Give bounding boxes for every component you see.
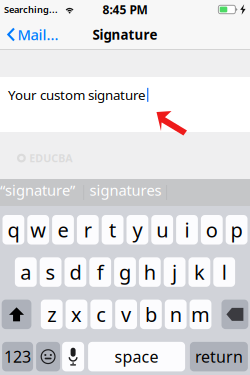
- staticText: l: [222, 259, 227, 285]
- button[interactable]: “signature”: [0, 179, 84, 206]
- button[interactable]: e: [52, 215, 74, 244]
- button[interactable]: Shift: [2, 300, 31, 329]
- button[interactable]: u: [151, 215, 173, 244]
- staticText: i: [184, 216, 189, 243]
- button[interactable]: f: [89, 257, 111, 287]
- button[interactable]: i: [176, 215, 198, 244]
- button[interactable]: Mail...: [0, 21, 64, 48]
- button[interactable]: g: [114, 257, 136, 287]
- staticText: Mail...: [18, 25, 59, 44]
- staticText: a: [20, 259, 31, 285]
- button[interactable]: l: [213, 257, 235, 287]
- button[interactable]: j: [164, 257, 185, 287]
- button[interactable]: signatures: [84, 179, 166, 206]
- staticText: 8:45 PM: [102, 1, 147, 17]
- button[interactable]: z: [41, 300, 63, 329]
- staticText: x: [71, 301, 82, 328]
- staticText: y: [132, 216, 142, 243]
- button[interactable]: h: [139, 257, 161, 287]
- button[interactable]: Delete: [221, 300, 248, 329]
- staticText: w: [30, 216, 46, 243]
- button[interactable]: b: [140, 300, 162, 329]
- staticText: o: [206, 216, 218, 243]
- staticText: d: [69, 259, 81, 285]
- button[interactable]: q: [2, 215, 24, 244]
- button[interactable]: return: [190, 342, 248, 371]
- staticText: m: [191, 301, 210, 328]
- button[interactable]: space: [88, 342, 185, 371]
- staticText: k: [194, 259, 205, 285]
- button[interactable]: o: [201, 215, 223, 244]
- button[interactable]: c: [90, 300, 112, 329]
- staticText: h: [144, 259, 156, 285]
- staticText: j: [172, 259, 177, 285]
- staticText: EDUCBA: [29, 151, 72, 165]
- button[interactable]: w: [27, 215, 49, 244]
- staticText: t: [109, 216, 116, 243]
- staticText: e: [57, 216, 68, 243]
- staticText: v: [121, 301, 131, 328]
- staticText: signatures: [89, 180, 161, 200]
- staticText: Signature: [92, 26, 157, 43]
- staticText: Your custom signature: [8, 86, 146, 104]
- staticText: s: [46, 259, 56, 285]
- button[interactable]: d: [64, 257, 86, 287]
- button[interactable]: m: [190, 300, 211, 329]
- staticText: q: [7, 216, 19, 243]
- staticText: g: [119, 259, 131, 285]
- staticText: space: [115, 346, 159, 367]
- staticText: return: [195, 346, 243, 367]
- button[interactable]: Emoji: [36, 342, 60, 371]
- staticText: n: [170, 301, 182, 328]
- button[interactable]: s: [40, 257, 61, 287]
- button[interactable]: a: [15, 257, 37, 287]
- button[interactable]: Dictation: [62, 342, 84, 371]
- staticText: z: [47, 301, 56, 328]
- button[interactable]: p: [226, 215, 247, 244]
- staticText: u: [156, 216, 168, 243]
- staticText: c: [96, 301, 106, 328]
- button[interactable]: t: [102, 215, 123, 244]
- staticText: “signature”: [0, 180, 75, 200]
- button[interactable]: r: [77, 215, 99, 244]
- button[interactable]: k: [188, 257, 210, 287]
- staticText: b: [145, 301, 157, 328]
- staticText: f: [97, 259, 104, 285]
- staticText: 123: [4, 346, 31, 367]
- staticText: p: [231, 216, 243, 243]
- button[interactable]: n: [165, 300, 187, 329]
- button[interactable]: y: [126, 215, 148, 244]
- staticText: Searching...: [4, 3, 58, 16]
- button[interactable]: 123: [2, 342, 33, 371]
- button[interactable]: v: [115, 300, 137, 329]
- staticText: r: [84, 216, 92, 243]
- button[interactable]: x: [66, 300, 87, 329]
